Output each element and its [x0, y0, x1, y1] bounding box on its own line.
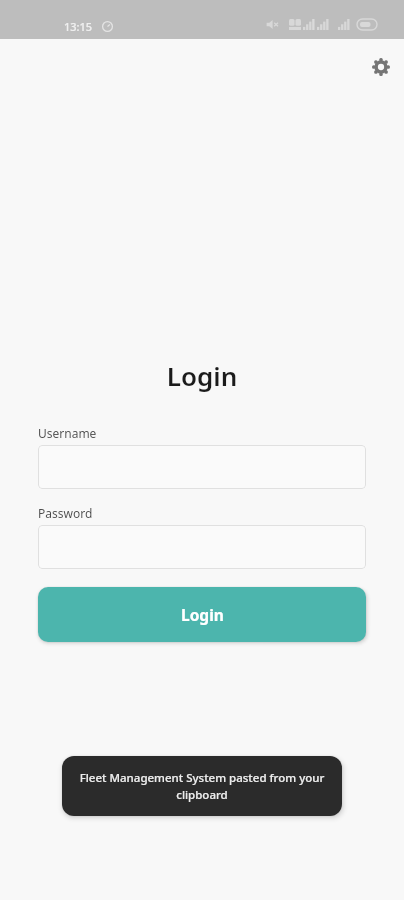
staticText: 13:15	[64, 19, 93, 34]
button[interactable]	[38, 445, 366, 489]
staticText: Password	[38, 505, 93, 521]
button[interactable]	[38, 525, 366, 569]
staticText: Login	[0, 358, 404, 393]
button[interactable]: Login	[38, 587, 366, 642]
staticText: Username	[38, 425, 97, 441]
staticText: Fleet Management System pasted from your…	[77, 770, 327, 803]
staticText: Login	[181, 604, 224, 625]
button[interactable]: Settings	[363, 49, 399, 85]
